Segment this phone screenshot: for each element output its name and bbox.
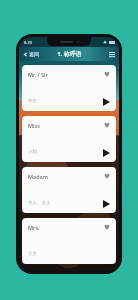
- button[interactable]: Favourite: [104, 224, 110, 230]
- staticText: 返回: [29, 51, 39, 57]
- staticText: 1. 称呼语: [57, 50, 82, 58]
- staticText: Mrs.: [28, 224, 40, 231]
- staticText: Madam: [28, 173, 48, 180]
- button[interactable]: Play: [103, 200, 110, 208]
- button[interactable]: Mr. / Sir: [22, 65, 116, 111]
- button[interactable]: Mrs.: [22, 218, 116, 264]
- button[interactable]: Favourite: [104, 122, 110, 128]
- button[interactable]: Favourite: [104, 173, 110, 179]
- staticText: 太太: [28, 251, 37, 257]
- staticText: Mr. / Sir: [28, 71, 48, 78]
- button[interactable]: 返回: [19, 48, 43, 60]
- staticText: 8:20: [24, 40, 32, 45]
- staticText: 先生: [28, 98, 37, 104]
- staticText: 夫人、女士: [28, 200, 51, 206]
- button[interactable]: Menu: [105, 48, 119, 61]
- button[interactable]: Favourite: [104, 71, 110, 77]
- button[interactable]: Madam: [22, 167, 116, 213]
- staticText: Miss: [28, 122, 40, 129]
- button[interactable]: Miss: [22, 116, 116, 162]
- button[interactable]: Play: [103, 149, 110, 157]
- staticText: 小姐: [28, 149, 37, 155]
- button[interactable]: Play: [103, 98, 110, 106]
